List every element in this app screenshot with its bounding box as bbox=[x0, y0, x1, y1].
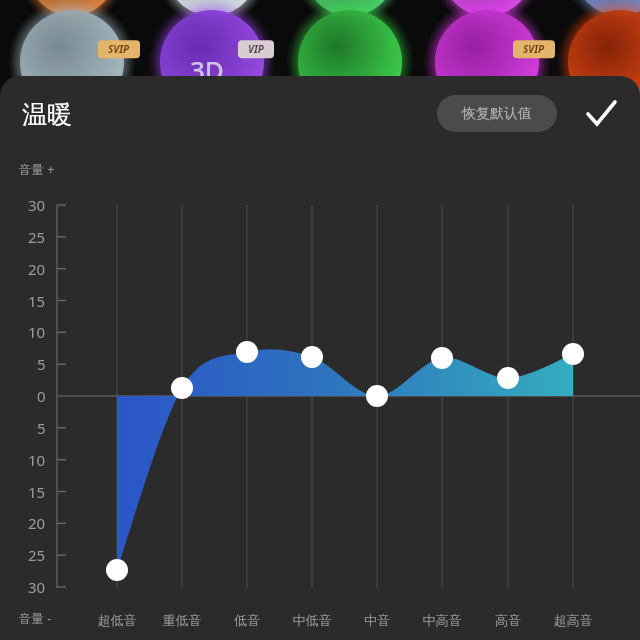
button[interactable]: Confirm bbox=[580, 92, 626, 136]
button[interactable] bbox=[437, 95, 557, 132]
